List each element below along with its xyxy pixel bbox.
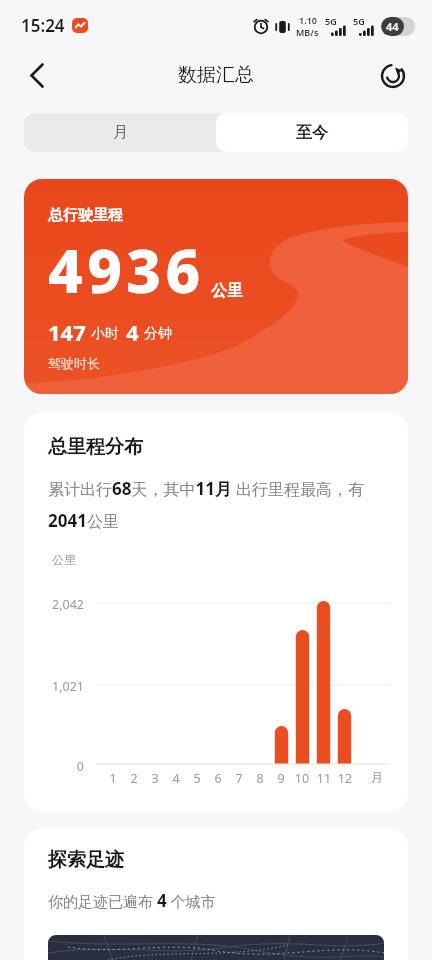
staticText: 月 xyxy=(369,770,385,786)
staticText: 小时 xyxy=(91,325,119,343)
staticText: 4 xyxy=(126,317,139,347)
staticText: 6 xyxy=(208,770,228,787)
staticText: 你的足迹已遍布 4 个城市 xyxy=(48,889,216,912)
staticText: 4 xyxy=(166,770,186,787)
staticText: 探索足迹 xyxy=(48,848,124,872)
staticText: 总里程分布 xyxy=(48,435,143,459)
staticText: 分钟 xyxy=(144,325,172,343)
button[interactable] xyxy=(20,55,60,95)
staticText: 1 xyxy=(103,770,123,787)
staticText: 总行驶里程 xyxy=(48,206,123,225)
staticText: 4936 xyxy=(48,229,205,311)
staticText: 2 xyxy=(124,770,144,787)
staticText: 驾驶时长 xyxy=(48,355,100,371)
staticText: 1,021 xyxy=(24,678,84,695)
staticText: 10 xyxy=(292,770,312,787)
staticText: 5G xyxy=(353,15,365,27)
button[interactable]: 月 xyxy=(24,113,216,152)
button[interactable]: 至今 xyxy=(216,113,408,152)
staticText: 12 xyxy=(335,770,355,787)
staticText: MB/s xyxy=(296,26,319,38)
staticText: 月 xyxy=(113,123,128,142)
button[interactable] xyxy=(373,55,413,95)
button[interactable]: 总行驶里程 xyxy=(24,179,408,394)
staticText: 7 xyxy=(229,770,249,787)
staticText: 5G xyxy=(325,15,337,27)
staticText: 2,042 xyxy=(24,596,84,613)
staticText: 11 xyxy=(314,770,334,787)
button[interactable]: 探索足迹 xyxy=(24,829,408,960)
staticText: 0 xyxy=(24,758,84,775)
staticText: 147 xyxy=(48,317,86,347)
staticText: 公里 xyxy=(52,552,76,567)
staticText: 1.10 xyxy=(299,14,317,26)
staticText: 9 xyxy=(271,770,291,787)
staticText: 15:24 xyxy=(21,14,65,37)
staticText: 44 xyxy=(386,19,399,34)
staticText: 至今 xyxy=(296,123,328,143)
staticText: 累计出行68天，其中11月 出行里程最高，有 2041公里 xyxy=(48,477,365,532)
staticText: 3 xyxy=(145,770,165,787)
staticText: 数据汇总 xyxy=(178,63,254,87)
staticText: 8 xyxy=(250,770,270,787)
staticText: 5 xyxy=(187,770,207,787)
staticText: 公里 xyxy=(211,281,243,301)
